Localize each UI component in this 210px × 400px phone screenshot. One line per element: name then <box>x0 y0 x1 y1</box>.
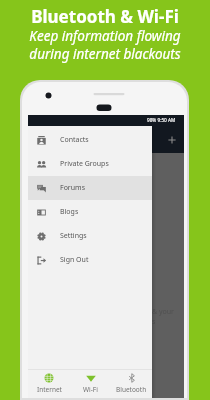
staticText: Bluetooth & Wi-Fi <box>31 5 179 28</box>
staticText: Forums <box>60 183 85 193</box>
button[interactable]: Blogs <box>28 200 152 224</box>
staticText: s <box>152 317 156 327</box>
button[interactable]: Wi-Fi <box>70 370 111 398</box>
staticText: Wi-Fi <box>83 385 98 394</box>
staticText: & your <box>152 307 174 317</box>
staticText: Blogs <box>60 207 79 217</box>
staticText: Sign Out <box>60 255 89 265</box>
button[interactable]: Forums <box>28 176 152 200</box>
button[interactable]: Private Groups <box>28 152 152 176</box>
staticText: Contacts <box>60 135 89 145</box>
staticText: Keep information flowing during internet… <box>29 27 181 63</box>
staticText: Bluetooth <box>116 385 147 394</box>
button[interactable]: Contacts <box>28 128 152 152</box>
button[interactable]: Settings <box>28 224 152 248</box>
staticText: Settings <box>60 231 87 241</box>
button[interactable]: Bluetooth <box>111 370 152 398</box>
button[interactable]: Add <box>164 132 180 148</box>
button[interactable]: Sign Out <box>28 248 152 272</box>
staticText: 98% 9:50 AM <box>147 117 176 123</box>
button[interactable]: Internet <box>28 370 70 398</box>
staticText: Private Groups <box>60 159 109 169</box>
staticText: Internet <box>37 385 62 394</box>
